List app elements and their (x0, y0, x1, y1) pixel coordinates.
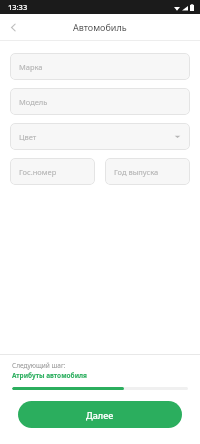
staticText: 13:33 (8, 2, 28, 12)
staticText: Год выпуска (114, 167, 159, 177)
staticText: Атрибуты автомобиля (12, 371, 88, 380)
staticText: Автомобиль (73, 21, 127, 33)
staticText: Модель (19, 97, 48, 107)
button[interactable]: Далее (18, 401, 182, 428)
button[interactable]: Модель (10, 88, 190, 115)
button[interactable]: Марка (10, 53, 190, 80)
button[interactable]: Гос.номер (10, 158, 95, 185)
staticText: Гос.номер (19, 167, 57, 177)
staticText: Далее (86, 409, 114, 421)
staticText: Цвет (19, 132, 37, 142)
button[interactable]: Back (0, 14, 26, 40)
staticText: Марка (19, 62, 43, 72)
staticText: Следующий шаг: (12, 361, 66, 370)
button[interactable]: Цвет (10, 123, 190, 150)
button[interactable]: Год выпуска (105, 158, 190, 185)
